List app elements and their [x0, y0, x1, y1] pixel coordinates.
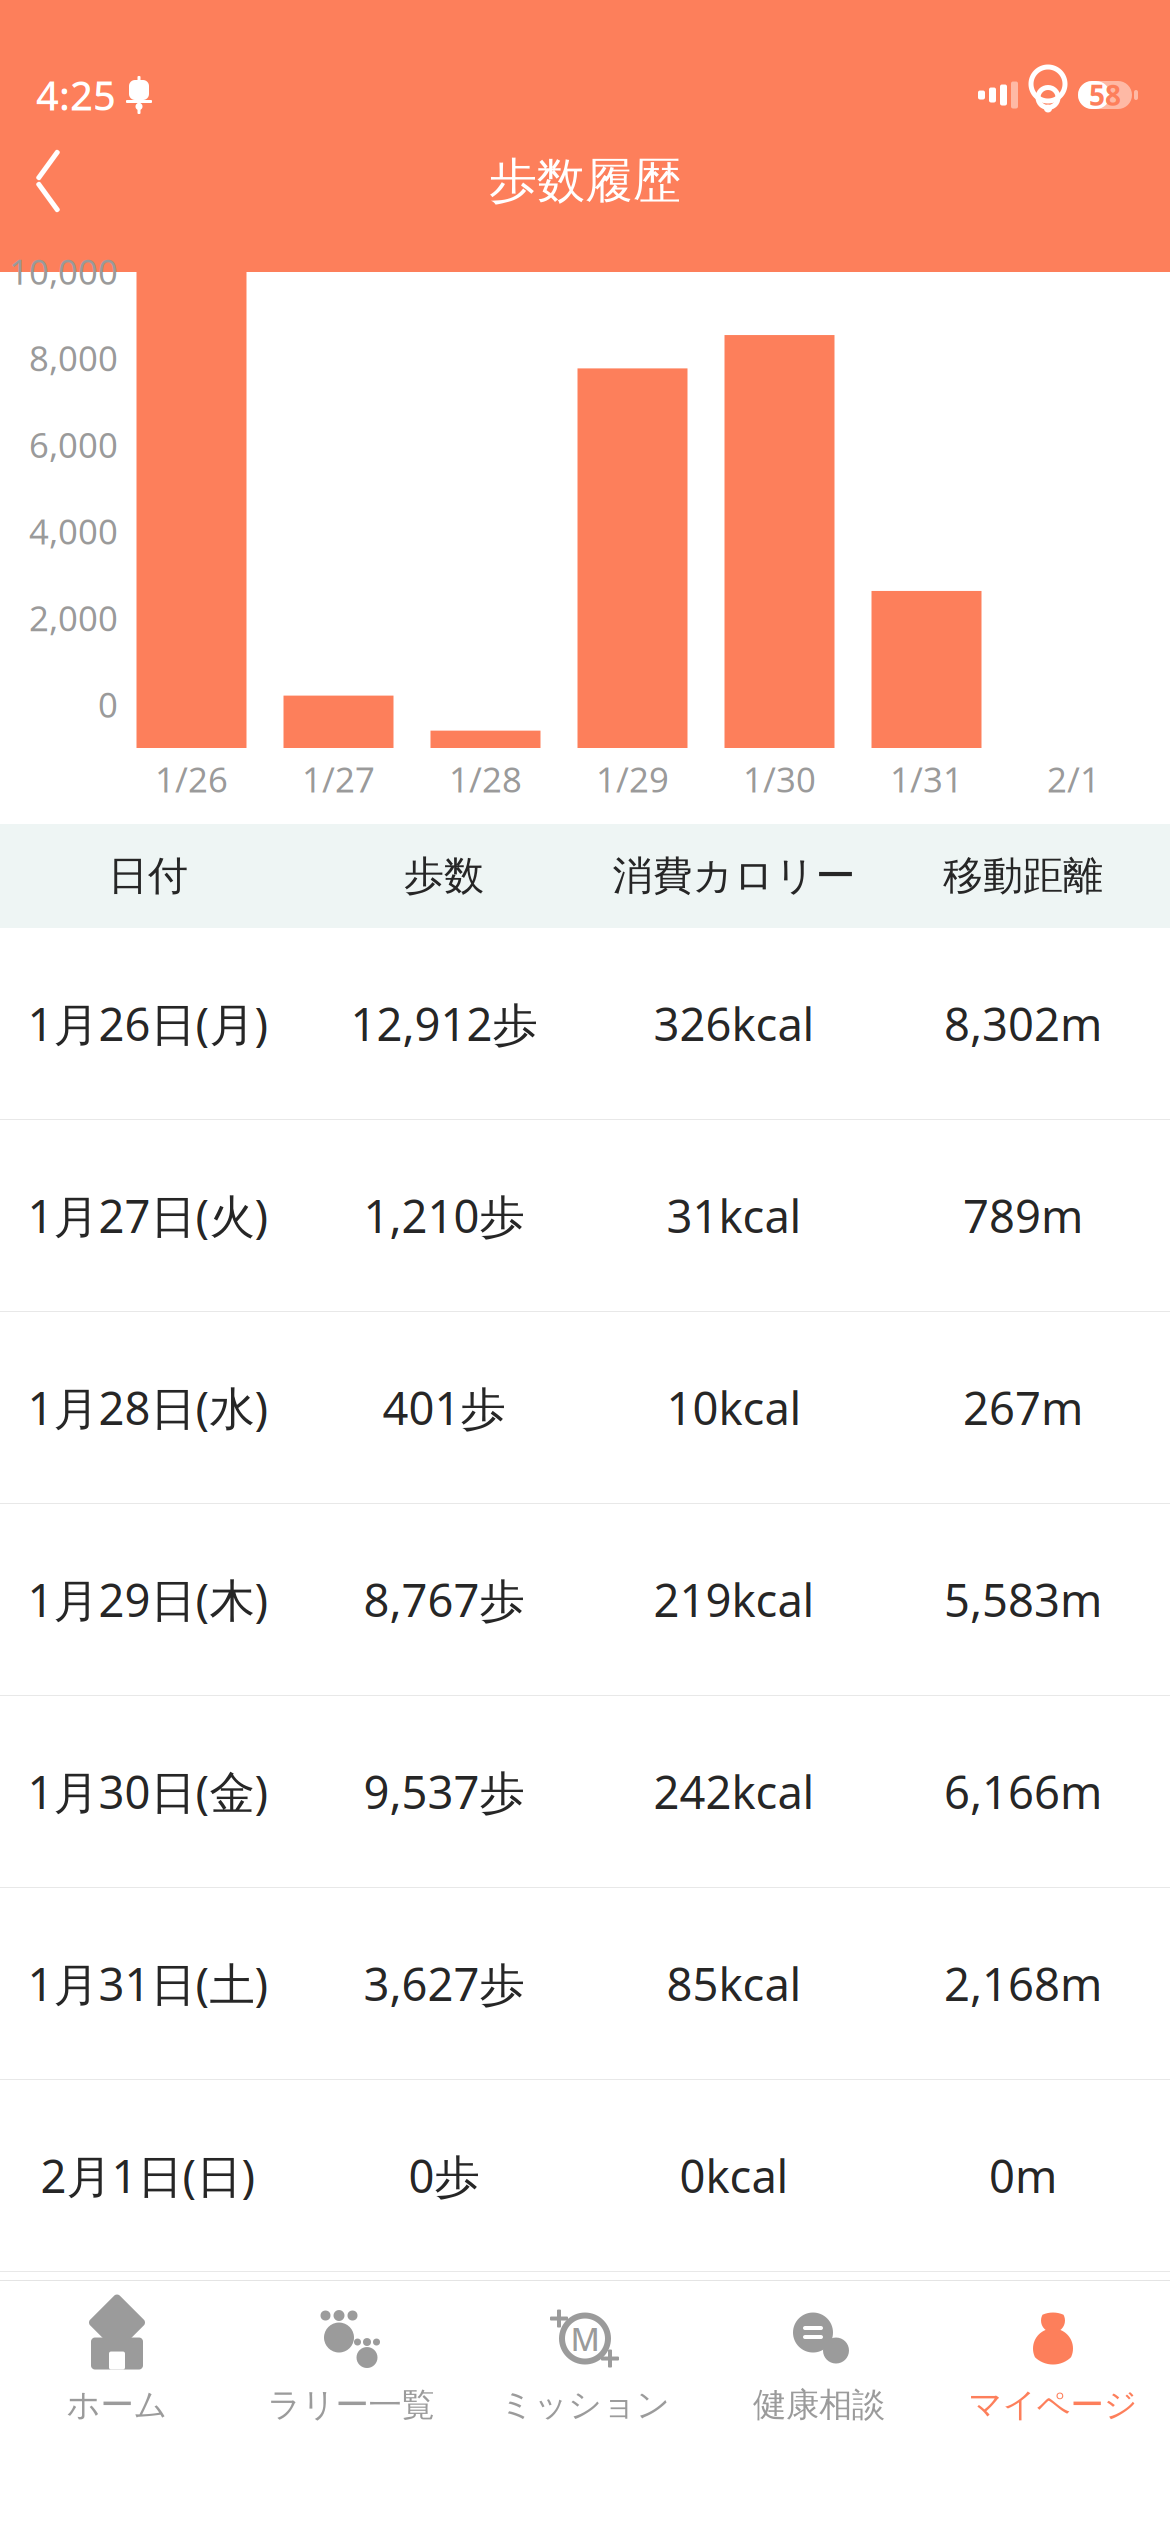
staticText: M: [570, 2317, 599, 2360]
button[interactable]: 戻る: [0, 133, 96, 229]
button[interactable]: 2月1日(日): [0, 2080, 1170, 2272]
staticText: 4,000: [29, 508, 118, 554]
staticText: 1/27: [302, 756, 375, 802]
button[interactable]: 1月31日(土): [0, 1888, 1170, 2080]
staticText: 8,302m: [944, 993, 1102, 1054]
staticText: 6,000: [29, 421, 118, 467]
staticText: 326kcal: [653, 993, 814, 1054]
staticText: 1/26: [155, 756, 228, 802]
staticText: 85kcal: [666, 1953, 801, 2014]
staticText: 0歩: [408, 2145, 479, 2206]
button[interactable]: M: [468, 2281, 702, 2433]
staticText: 1/30: [743, 756, 816, 802]
staticText: 1,210歩: [363, 1185, 524, 1246]
staticText: 1月31日(土): [27, 1953, 268, 2014]
staticText: 10kcal: [666, 1377, 801, 1438]
staticText: 58: [1089, 76, 1121, 114]
staticText: 2,168m: [944, 1953, 1102, 2014]
button[interactable]: 1月29日(木): [0, 1504, 1170, 1696]
staticText: 401歩: [382, 1377, 505, 1438]
staticText: 4:25: [36, 68, 116, 121]
staticText: 1月26日(月): [27, 993, 268, 1054]
staticText: 歩数: [404, 851, 484, 900]
staticText: 0: [98, 681, 118, 727]
staticText: ラリー一覧: [267, 2384, 434, 2425]
staticText: 2/1: [1047, 756, 1100, 802]
staticText: 219kcal: [653, 1569, 814, 1630]
staticText: 3,627歩: [363, 1953, 524, 2014]
staticText: 12,912歩: [350, 993, 537, 1054]
staticText: 1/31: [890, 756, 963, 802]
staticText: マイページ: [968, 2384, 1137, 2425]
staticText: 日付: [108, 851, 188, 900]
staticText: 移動距離: [943, 851, 1103, 900]
staticText: 31kcal: [666, 1185, 801, 1246]
staticText: 5,583m: [944, 1569, 1102, 1630]
button[interactable]: ホーム: [0, 2281, 234, 2433]
staticText: 242kcal: [653, 1761, 814, 1822]
staticText: 8,000: [29, 335, 118, 381]
button[interactable]: 1月26日(月): [0, 928, 1170, 1120]
staticText: 1/28: [449, 756, 522, 802]
staticText: 789m: [963, 1185, 1083, 1246]
staticText: ホーム: [66, 2384, 167, 2425]
staticText: ミッション: [500, 2384, 670, 2425]
staticText: 1月28日(水): [27, 1377, 268, 1438]
staticText: 1月30日(金): [27, 1761, 268, 1822]
staticText: 6,166m: [944, 1761, 1102, 1822]
button[interactable]: マイページ: [936, 2281, 1170, 2433]
staticText: 9,537歩: [363, 1761, 524, 1822]
button[interactable]: 健康相談: [702, 2281, 936, 2433]
staticText: 1/29: [596, 756, 669, 802]
button[interactable]: ラリー一覧: [234, 2281, 468, 2433]
staticText: 267m: [963, 1377, 1083, 1438]
staticText: 健康相談: [753, 2384, 885, 2425]
staticText: 8,767歩: [363, 1569, 524, 1630]
staticText: 1月27日(火): [27, 1185, 268, 1246]
button[interactable]: 1月30日(金): [0, 1696, 1170, 1888]
staticText: 0kcal: [679, 2145, 788, 2206]
staticText: 1月29日(木): [27, 1569, 268, 1630]
staticText: 歩数履歴: [489, 151, 681, 210]
button[interactable]: 1月28日(水): [0, 1312, 1170, 1504]
staticText: 2,000: [29, 595, 118, 641]
staticText: 0m: [989, 2145, 1057, 2206]
staticText: 2月1日(日): [40, 2145, 255, 2206]
staticText: 10,000: [9, 248, 118, 294]
button[interactable]: 1月27日(火): [0, 1120, 1170, 1312]
staticText: 消費カロリー: [612, 851, 855, 900]
